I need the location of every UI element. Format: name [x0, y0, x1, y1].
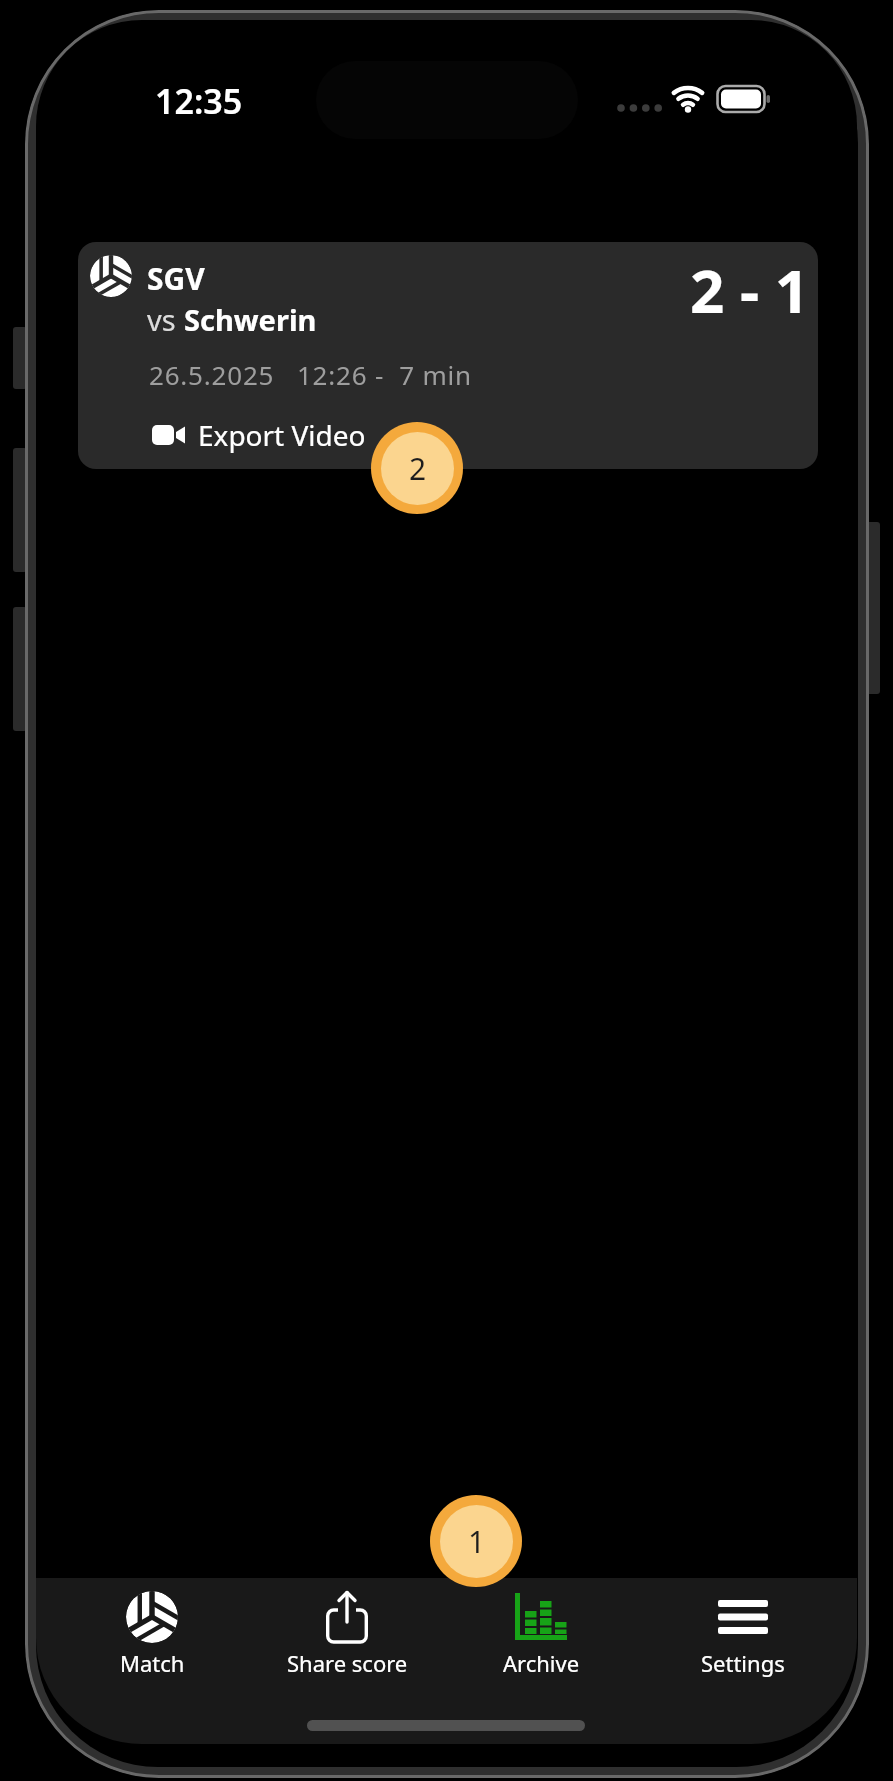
staticText: SGV — [147, 258, 205, 299]
staticText: 12:35 — [155, 78, 243, 122]
staticText: Schwerin — [184, 300, 317, 339]
staticText: Match — [120, 1648, 185, 1678]
staticText: Export Video — [198, 416, 366, 454]
button[interactable]: Settings — [653, 1590, 833, 1678]
staticText: vs — [147, 300, 184, 339]
button[interactable]: Export Video — [152, 416, 366, 454]
staticText: 26.5.2025 12:26 - 7 min — [149, 357, 472, 392]
staticText: Share score — [287, 1648, 408, 1678]
button[interactable]: Match — [62, 1590, 242, 1678]
button[interactable]: Share score — [257, 1590, 437, 1678]
staticText: 2 - 1 — [690, 249, 810, 319]
staticText: 2 — [409, 448, 427, 489]
staticText: Settings — [701, 1648, 785, 1678]
staticText: Archive — [503, 1648, 580, 1678]
button[interactable]: Archive — [451, 1590, 631, 1678]
button[interactable]: SGV — [78, 242, 818, 469]
staticText: 1 — [468, 1521, 486, 1562]
